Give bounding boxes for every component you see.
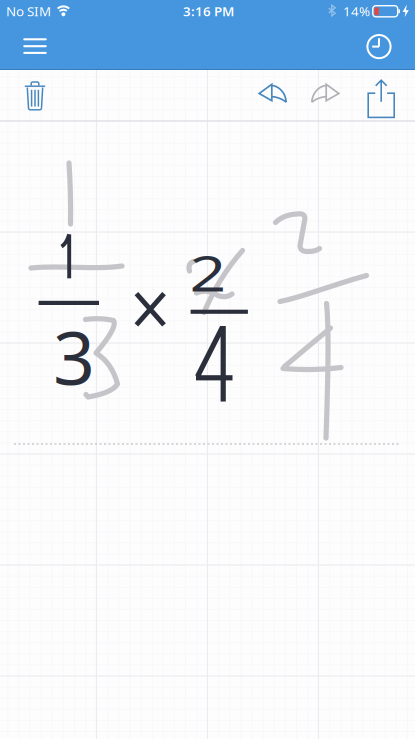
staticText: 2: [194, 239, 222, 305]
button[interactable]: Menu: [13, 24, 57, 68]
staticText: 3: [53, 308, 95, 405]
staticText: No SIM: [6, 2, 51, 20]
staticText: 3:16 PM: [183, 2, 234, 20]
staticText: 14%: [343, 2, 370, 20]
button[interactable]: Delete: [14, 74, 58, 118]
button[interactable]: Undo: [249, 72, 293, 116]
button[interactable]: Share: [359, 74, 403, 122]
button[interactable]: History: [357, 24, 401, 68]
button[interactable]: Redo: [304, 72, 348, 116]
